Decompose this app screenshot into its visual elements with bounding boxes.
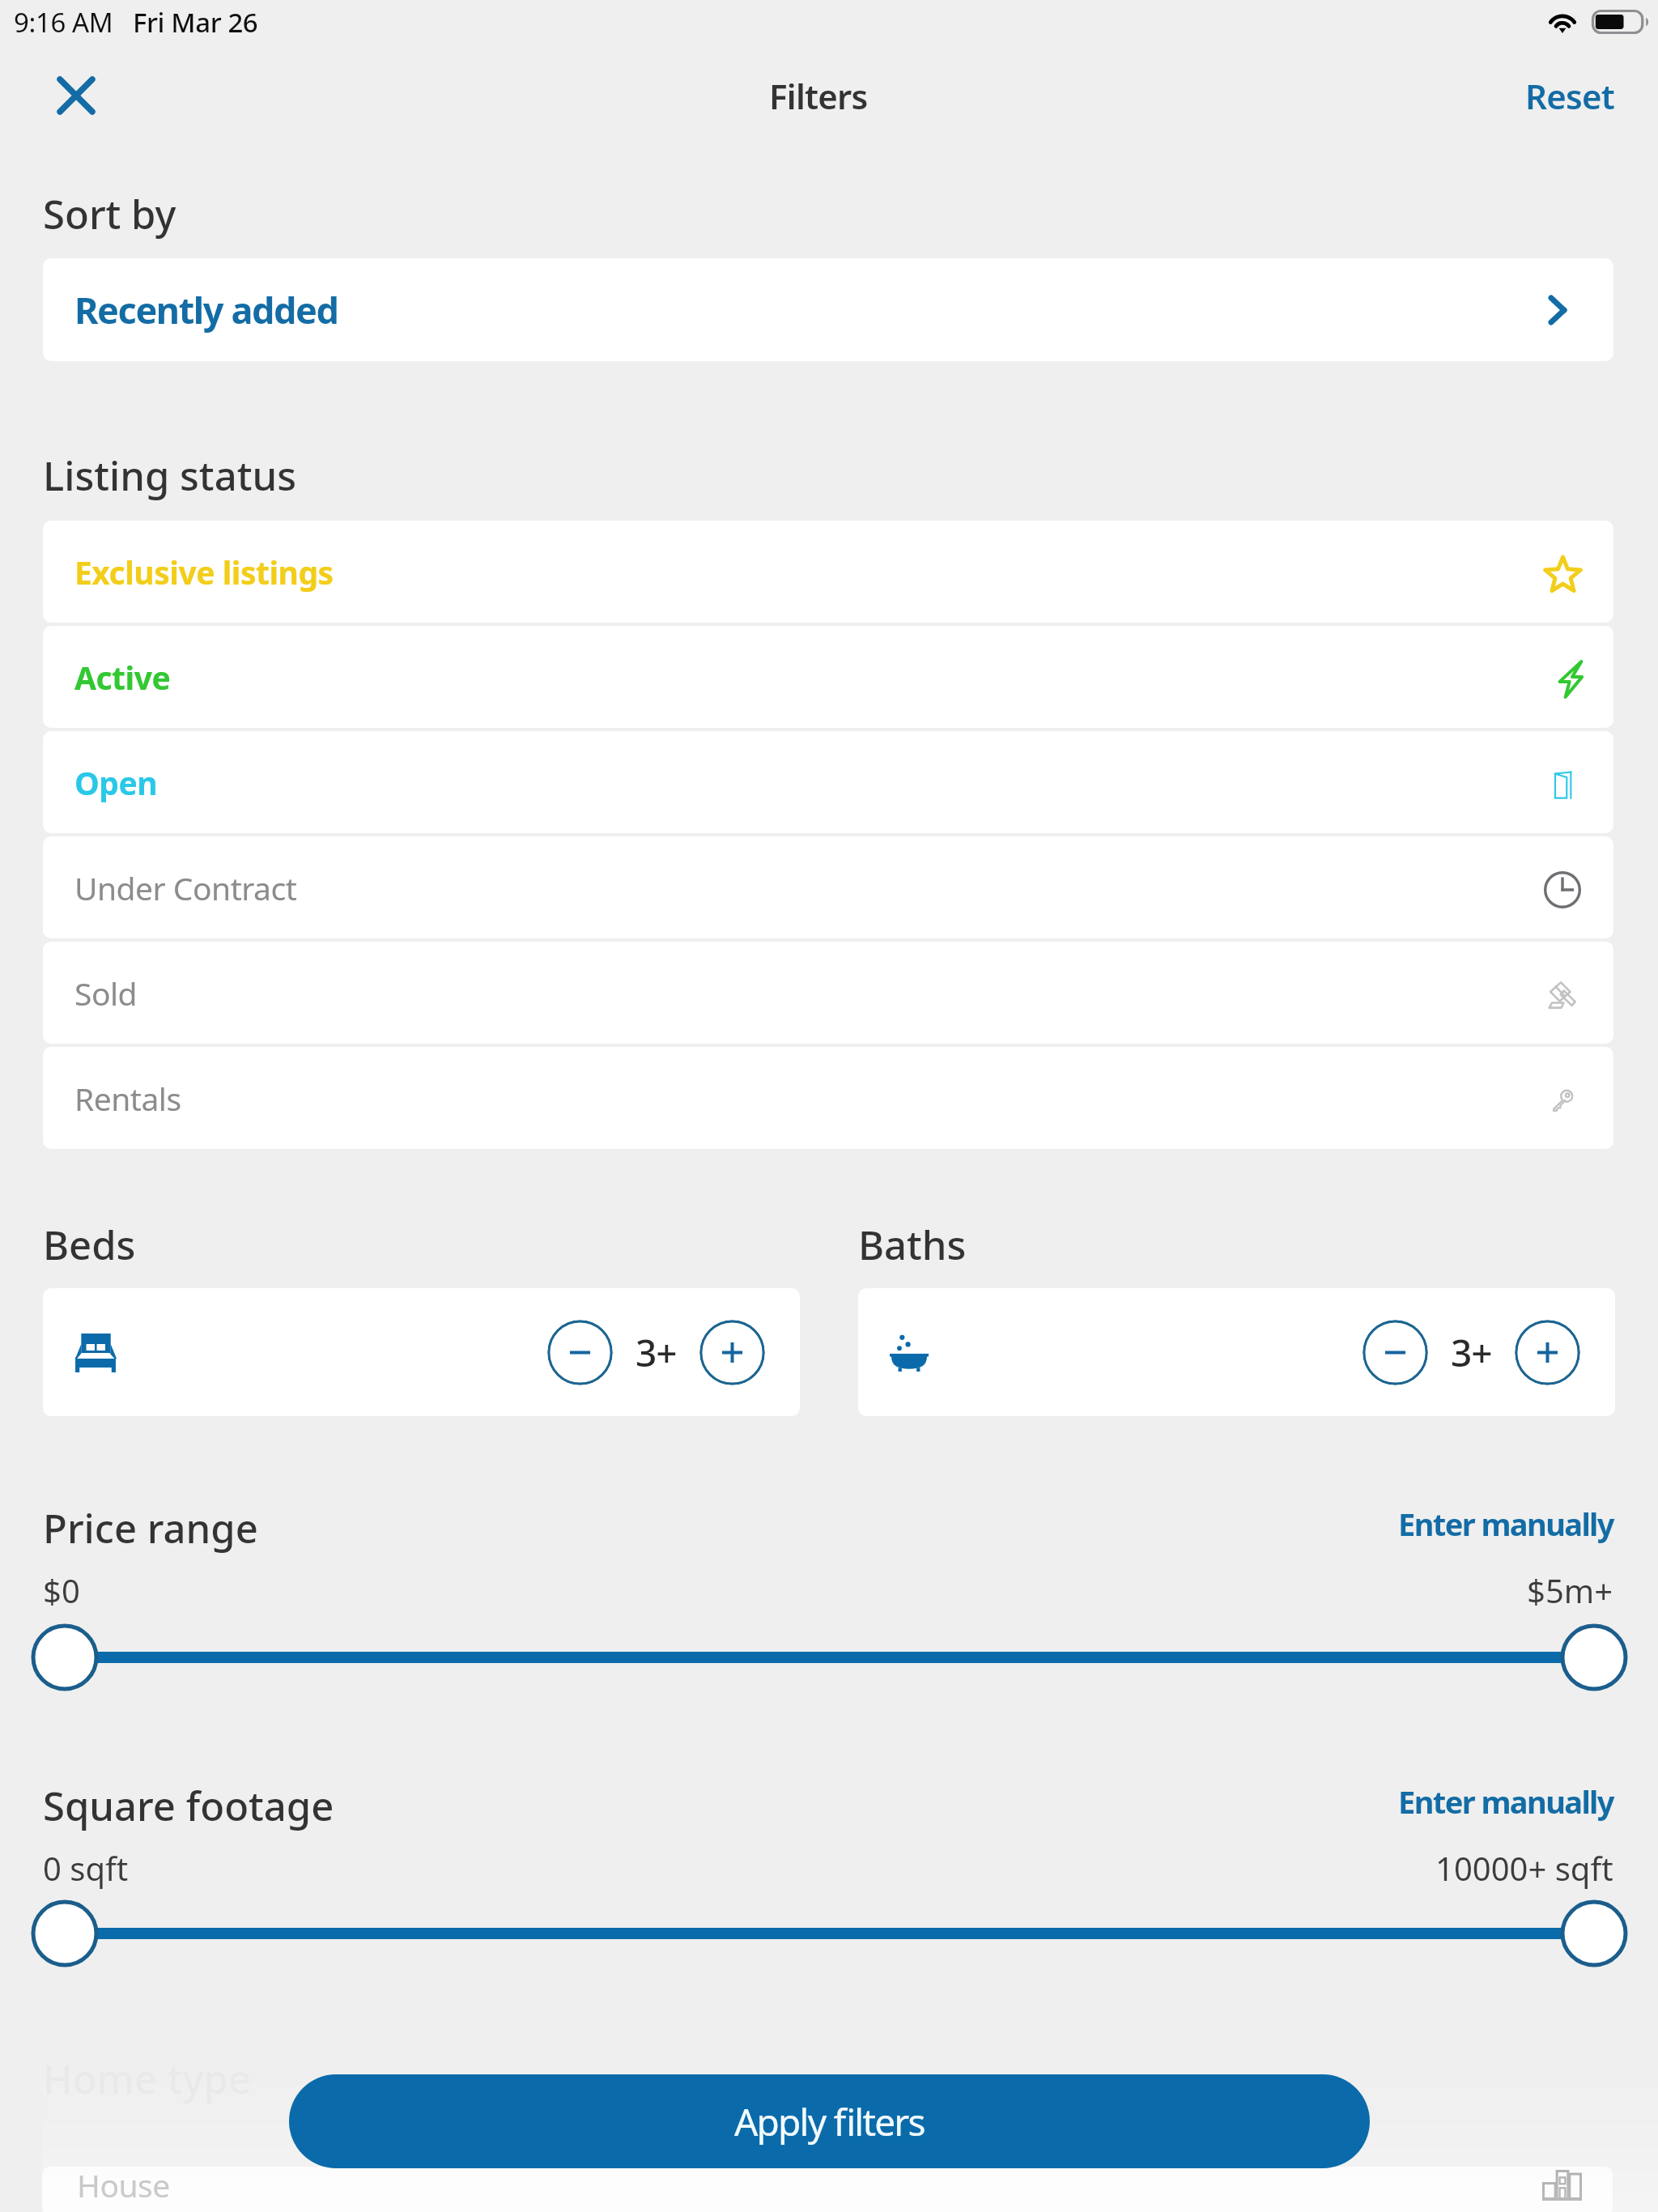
button[interactable]: Increase [1515,1320,1580,1385]
button[interactable]: Decrease [1363,1320,1428,1385]
button[interactable]: Rentals [43,1047,1613,1149]
staticText: 3+ [1451,1327,1492,1378]
button[interactable]: Decrease [43,1288,800,1416]
button[interactable]: Enter manually [1398,1503,1613,1545]
button[interactable]: Under Contract [43,836,1613,938]
staticText: $0 [43,1568,80,1612]
button[interactable]: Increase [699,1320,765,1385]
staticText: Recently added [74,285,338,334]
button[interactable]: Apply filters [289,2074,1370,2168]
button[interactable]: Recently added [43,258,1613,361]
staticText: $5m+ [1527,1568,1613,1612]
staticText: Under Contract [74,866,297,909]
staticText: Open [74,761,158,804]
button[interactable]: Decrease [858,1288,1615,1416]
staticText: 0 sqft [43,1846,129,1890]
staticText: Fri Mar 26 [133,4,258,40]
staticText: Reset [1525,73,1614,119]
button[interactable]: Sold [43,942,1613,1044]
staticText: Price range [43,1501,258,1555]
staticText: 9:16 AM [14,4,113,40]
button[interactable]: Open [43,731,1613,833]
button[interactable]: Exclusive listings [43,521,1613,623]
staticText: Listing status [43,449,296,503]
button[interactable]: Price range maximum [1562,1626,1626,1689]
staticText: Beds [43,1218,136,1272]
button[interactable]: Decrease [547,1320,613,1385]
staticText: House [77,2163,170,2206]
staticText: Exclusive listings [74,551,334,593]
staticText: Apply filters [734,2096,925,2147]
staticText: Square footage [43,1779,334,1833]
button[interactable]: Square footage minimum [33,1902,96,1965]
staticText: 10000+ sqft [1435,1846,1613,1890]
button[interactable]: Active [43,626,1613,728]
staticText: Filters [769,73,868,119]
staticText: Enter manually [1398,1780,1613,1823]
staticText: Sold [74,972,138,1015]
staticText: Sort by [43,187,176,241]
staticText: 3+ [636,1327,677,1378]
button[interactable]: Square footage maximum [1562,1902,1626,1965]
button[interactable]: Enter manually [1398,1780,1613,1823]
staticText: Enter manually [1398,1503,1613,1545]
staticText: Rentals [74,1077,181,1120]
staticText: Active [74,656,171,699]
button[interactable]: Close [47,66,105,125]
button[interactable]: Reset [1525,73,1614,119]
staticText: Baths [858,1218,967,1272]
button[interactable]: Price range minimum [33,1626,96,1689]
button[interactable] [42,2167,1613,2212]
